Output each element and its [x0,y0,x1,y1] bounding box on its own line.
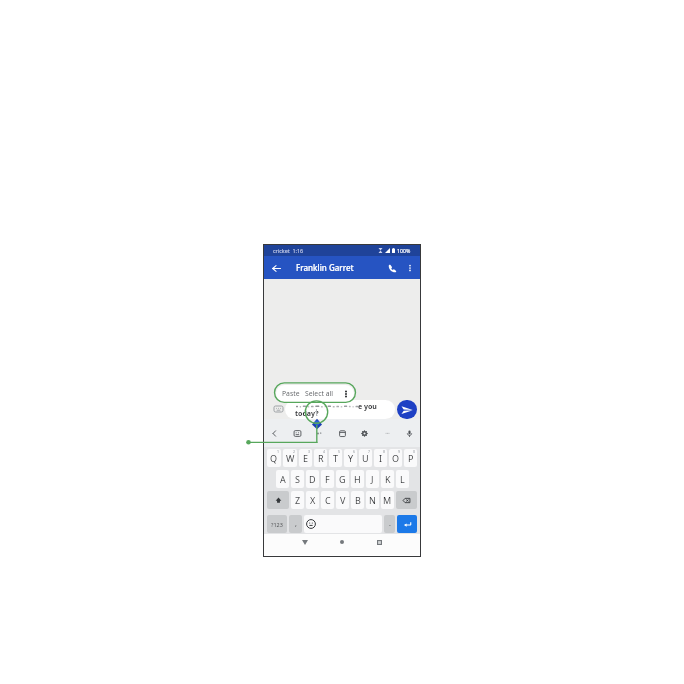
staticText: P [408,452,414,464]
button[interactable]: Paste [282,385,300,402]
button[interactable]: Expand [267,426,282,441]
staticText: T [333,452,339,464]
button[interactable]: Keyboard [273,405,283,412]
staticText: ?123 [271,521,283,528]
button[interactable]: Back [268,260,284,276]
staticText: Q [270,452,278,464]
staticText: W [286,452,295,464]
button[interactable]: Home [336,536,348,548]
button[interactable]: V [336,491,349,509]
staticText: 9 [398,449,401,454]
staticText: e you [358,402,377,412]
staticText: H [354,473,361,485]
staticText: S [295,473,300,485]
staticText: A [280,473,286,485]
staticText: today? [295,409,319,419]
button[interactable]: K [381,470,394,488]
staticText: Select all [305,389,333,398]
button[interactable]: I [374,449,387,467]
button[interactable]: L [396,470,409,488]
button[interactable]: C [321,491,334,509]
button[interactable]: More options [340,388,352,400]
button[interactable]: Select all [303,385,335,402]
button[interactable]: ?123 [267,515,287,533]
button[interactable]: O [389,449,402,467]
button[interactable]: G [336,470,349,488]
button[interactable]: J [366,470,379,488]
button[interactable]: Back [299,536,311,548]
button[interactable]: Y [344,449,357,467]
button[interactable]: Voice input [402,426,417,441]
button[interactable]: E [299,449,312,467]
staticText: G [339,473,346,485]
button[interactable]: Stickers [290,426,305,441]
staticText: 7 [368,449,371,454]
button[interactable]: Send [397,400,417,419]
button[interactable]: More options [403,261,417,275]
button[interactable]: R [314,449,327,467]
staticText: D [309,473,316,485]
staticText: E [303,452,309,464]
staticText: 8 [383,449,386,454]
staticText: 1 [277,449,280,454]
staticText: 0 [413,449,416,454]
button[interactable]: M [381,491,394,509]
staticText: Franklin Garret [296,262,354,273]
button[interactable]: B [351,491,364,509]
button[interactable]: P [404,449,417,467]
button[interactable]: D [306,470,319,488]
button[interactable]: Space [304,515,382,533]
staticText: 3 [308,449,311,454]
button[interactable]: GIF [312,426,327,441]
staticText: N [369,494,376,506]
button[interactable]: X [306,491,319,509]
button[interactable]: U [359,449,372,467]
staticText: C [325,494,331,506]
staticText: V [340,494,346,506]
staticText: 6 [353,449,356,454]
staticText: R [318,452,324,464]
button[interactable]: F [321,470,334,488]
button[interactable]: Settings [357,426,372,441]
button[interactable]: A [276,470,289,488]
staticText: K [385,473,391,485]
button[interactable]: , [289,515,302,533]
staticText: B [355,494,361,506]
button[interactable]: Backspace [396,491,417,509]
staticText: O [392,452,400,464]
button[interactable]: Z [291,491,304,509]
staticText: Paste [282,389,300,398]
staticText: 5 [338,449,341,454]
staticText: Z [295,494,301,506]
button[interactable]: W [283,449,297,467]
button[interactable]: S [291,470,304,488]
staticText: cricket 1:16 [273,247,304,254]
button[interactable]: Calendar [335,426,350,441]
staticText: . [389,519,391,529]
staticText: 2 [293,449,296,454]
button[interactable]: N [366,491,379,509]
staticText: Y [348,452,354,464]
button[interactable]: e you [285,400,395,419]
button[interactable]: Recents [373,536,385,548]
staticText: 100% [397,247,411,254]
button[interactable]: T [329,449,342,467]
staticText: X [310,494,316,506]
staticText: U [362,452,369,464]
button[interactable]: . [384,515,395,533]
staticText: 4 [323,449,326,454]
button[interactable]: H [351,470,364,488]
staticText: L [400,473,405,485]
button[interactable]: Shift [267,491,289,509]
button[interactable]: More [380,426,395,441]
staticText: M [383,494,392,506]
button[interactable]: Q [267,449,281,467]
button[interactable]: Call [385,261,399,275]
staticText: , [295,519,297,529]
staticText: F [325,473,330,485]
staticText: J [371,473,374,485]
staticText: I [379,452,383,464]
button[interactable]: Enter [397,515,417,533]
